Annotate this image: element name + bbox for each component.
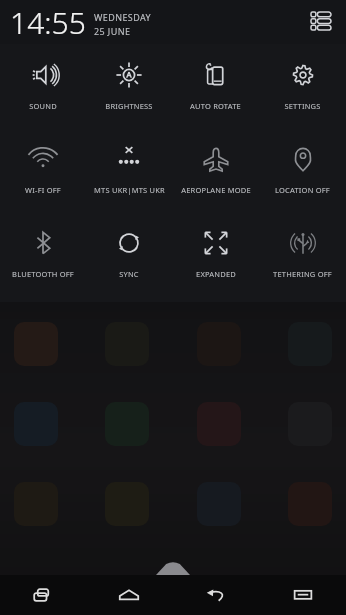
staticText: BLUETOOTH OFF: [12, 269, 74, 279]
staticText: SOUND: [29, 101, 57, 111]
staticText: 25 JUNE: [94, 25, 131, 37]
button[interactable]: MTS UKR|MTS UKR: [86, 128, 172, 212]
staticText: 14:55: [10, 2, 86, 43]
staticText: SYNC: [119, 269, 139, 279]
button[interactable]: Menu: [259, 575, 346, 615]
button[interactable]: Recents: [0, 575, 86, 615]
button[interactable]: SOUND: [0, 44, 86, 128]
button[interactable]: AEROPLANE MODE: [172, 128, 259, 212]
button[interactable]: EXPANDED: [172, 212, 259, 296]
staticText: LOCATION OFF: [275, 185, 330, 195]
button[interactable]: Home: [86, 575, 172, 615]
button[interactable]: Edit quick settings: [306, 7, 336, 37]
staticText: WI-FI OFF: [25, 185, 61, 195]
button[interactable]: AUTO ROTATE: [172, 44, 259, 128]
button[interactable]: SYNC: [86, 212, 172, 296]
staticText: BRIGHTNESS: [105, 101, 153, 111]
button[interactable]: Back: [172, 575, 259, 615]
staticText: MTS UKR|MTS UKR: [94, 185, 165, 195]
button[interactable]: LOCATION OFF: [259, 128, 346, 212]
staticText: AEROPLANE MODE: [181, 185, 251, 195]
staticText: WEDNESDAY: [94, 11, 152, 23]
staticText: AUTO ROTATE: [190, 101, 241, 111]
staticText: SETTINGS: [284, 101, 321, 111]
button[interactable]: BLUETOOTH OFF: [0, 212, 86, 296]
button[interactable]: BRIGHTNESS: [86, 44, 172, 128]
button[interactable]: TETHERING OFF: [259, 212, 346, 296]
button[interactable]: Collapse panel: [156, 563, 190, 575]
button[interactable]: SETTINGS: [259, 44, 346, 128]
staticText: TETHERING OFF: [273, 269, 332, 279]
staticText: EXPANDED: [196, 269, 236, 279]
button[interactable]: WI-FI OFF: [0, 128, 86, 212]
